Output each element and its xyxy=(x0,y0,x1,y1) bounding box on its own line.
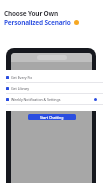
button[interactable]: Get Every Fix xyxy=(0,72,103,82)
staticText: Personalized Scenario xyxy=(4,18,71,27)
staticText: Weekly Notification & Settings xyxy=(11,97,61,102)
button[interactable]: Weekly Notification & Settings xyxy=(0,94,103,104)
staticText: Get Library xyxy=(11,86,30,91)
button[interactable]: Get Library xyxy=(0,83,103,93)
button[interactable]: Start Chatting xyxy=(28,114,76,120)
staticText: Choose Your Own xyxy=(4,9,58,18)
staticText: Get Every Fix xyxy=(11,75,33,80)
staticText: Start Chatting xyxy=(40,115,64,120)
